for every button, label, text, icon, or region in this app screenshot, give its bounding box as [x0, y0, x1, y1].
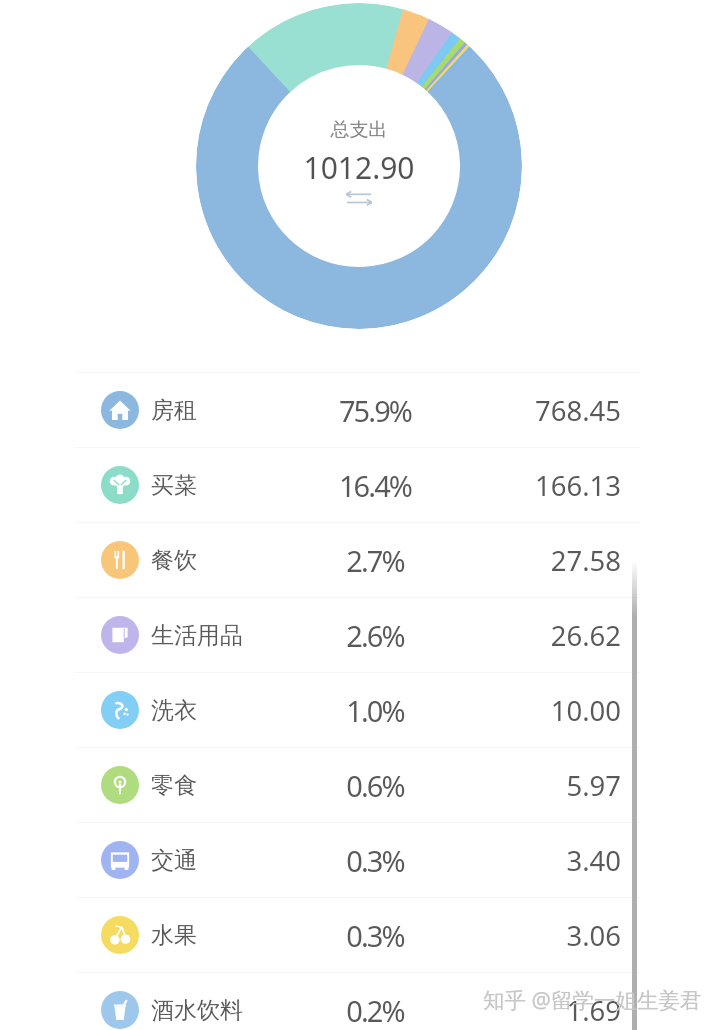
- staticText: 2.7%: [275, 541, 475, 580]
- staticText: 16.4%: [275, 466, 475, 505]
- staticText: 3.40: [421, 842, 621, 879]
- staticText: 0.3%: [275, 841, 475, 880]
- staticText: 知乎 @留学一姐生姜君: [483, 985, 702, 1014]
- staticText: 10.00: [421, 692, 621, 729]
- staticText: 75.9%: [275, 391, 475, 430]
- staticText: 2.6%: [275, 616, 475, 655]
- staticText: 3.06: [421, 917, 621, 954]
- other: Switch chart: [345, 190, 373, 206]
- staticText: 1012.90: [259, 147, 459, 188]
- button[interactable]: 水果: [0, 898, 720, 972]
- staticText: 0.3%: [275, 916, 475, 955]
- staticText: 0.2%: [275, 991, 475, 1030]
- staticText: 0.6%: [275, 766, 475, 805]
- button[interactable]: 生活用品: [0, 598, 720, 672]
- staticText: 酒水饮料: [151, 996, 243, 1025]
- staticText: 26.62: [421, 617, 621, 654]
- staticText: 1.0%: [275, 691, 475, 730]
- button[interactable]: 酒水饮料: [0, 973, 720, 1030]
- staticText: 1.69: [421, 992, 621, 1029]
- button[interactable]: 零食: [0, 748, 720, 822]
- staticText: 餐饮: [151, 546, 197, 575]
- staticText: 27.58: [421, 542, 621, 579]
- staticText: 零食: [151, 771, 197, 800]
- staticText: 洗衣: [151, 696, 197, 725]
- staticText: 交通: [151, 846, 197, 875]
- staticText: 166.13: [421, 467, 621, 504]
- staticText: 768.45: [421, 392, 621, 429]
- button[interactable]: 房租: [0, 373, 720, 447]
- button[interactable]: 洗衣: [0, 673, 720, 747]
- staticText: 买菜: [151, 471, 197, 500]
- staticText: 水果: [151, 921, 197, 950]
- button[interactable]: 买菜: [0, 448, 720, 522]
- button[interactable]: 交通: [0, 823, 720, 897]
- staticText: 5.97: [421, 767, 621, 804]
- staticText: 生活用品: [151, 621, 243, 650]
- staticText: 房租: [151, 396, 197, 425]
- staticText: 总支出: [259, 118, 459, 142]
- button[interactable]: 餐饮: [0, 523, 720, 597]
- button[interactable]: Expense breakdown pie chart: [196, 3, 522, 329]
